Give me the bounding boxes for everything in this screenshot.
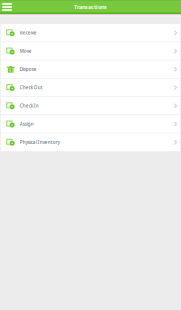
staticText: Dispose (20, 66, 37, 72)
staticText: Assign (20, 121, 34, 127)
button[interactable]: Menu (0, 0, 14, 14)
button[interactable]: Physical Inventory (1, 133, 180, 151)
button[interactable]: Check Out (1, 79, 180, 96)
button[interactable]: Receive (1, 24, 180, 42)
button[interactable]: Assign (1, 115, 180, 133)
button[interactable]: Move (1, 42, 180, 60)
staticText: Check In (20, 103, 39, 109)
staticText: Physical Inventory (20, 139, 60, 145)
staticText: Move (20, 48, 32, 54)
button[interactable]: Check In (1, 97, 180, 115)
staticText: Transactions (74, 3, 107, 11)
button[interactable]: Dispose (1, 60, 180, 78)
staticText: Receive (20, 30, 37, 36)
staticText: Check Out (20, 84, 43, 91)
